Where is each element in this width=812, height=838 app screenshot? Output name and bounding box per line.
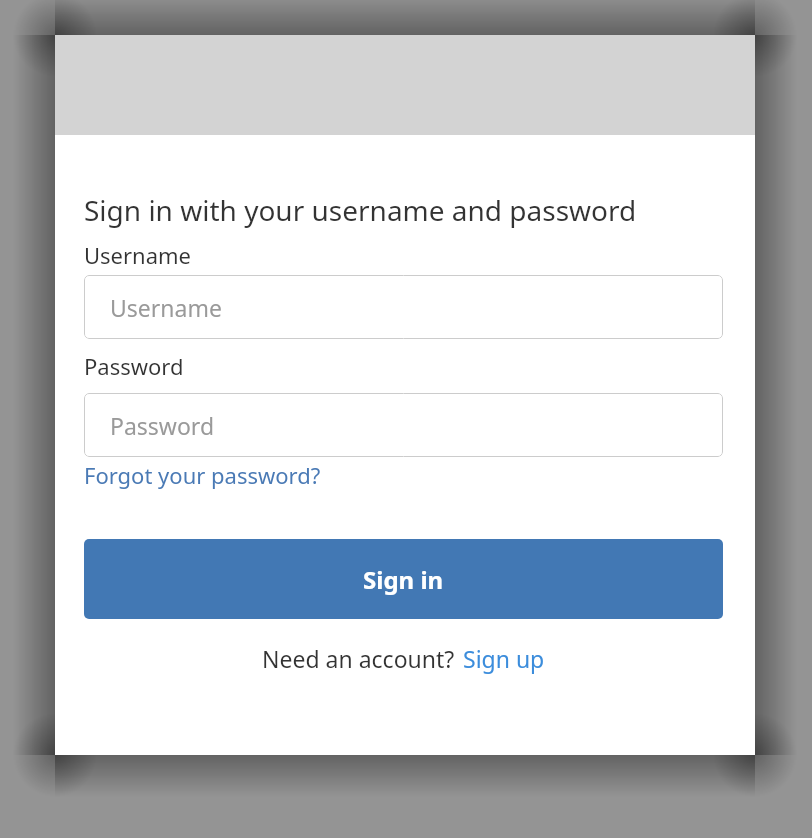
staticText: Sign in	[363, 563, 444, 596]
button[interactable]: Sign up	[463, 643, 545, 674]
staticText: Username	[84, 240, 192, 270]
staticText: Password	[84, 351, 184, 381]
button[interactable]: Password	[84, 393, 723, 457]
button[interactable]: Username	[84, 275, 723, 339]
staticText: Sign up	[463, 643, 545, 674]
staticText: Username	[110, 292, 222, 323]
button[interactable]: Forgot your password?	[84, 457, 321, 493]
staticText: Sign in with your username and password	[84, 191, 637, 229]
button[interactable]: Sign in	[84, 539, 723, 619]
staticText: Need an account?	[262, 643, 455, 674]
staticText: Forgot your password?	[84, 460, 321, 490]
staticText: Password	[110, 410, 215, 441]
